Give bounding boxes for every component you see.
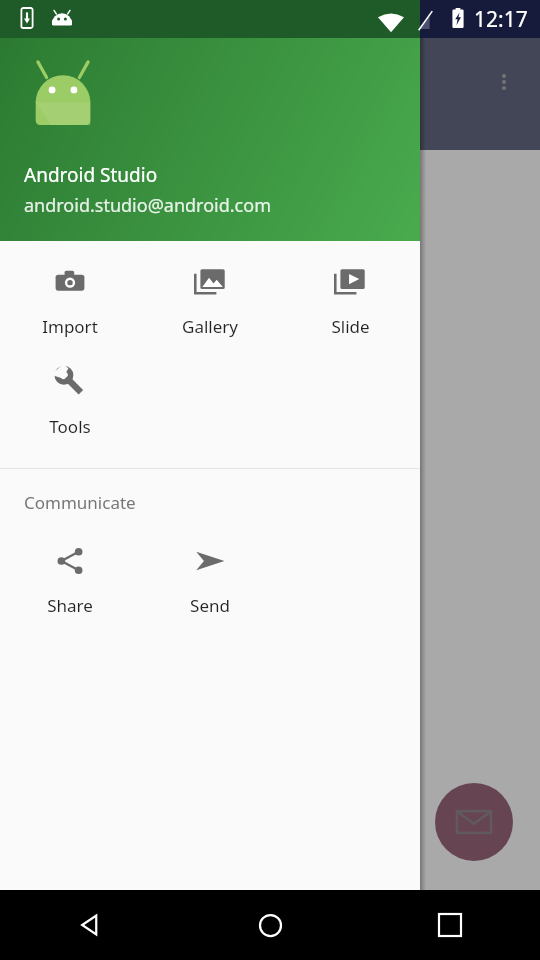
button[interactable]: Import [0,252,140,352]
button[interactable]: Slide [280,252,420,352]
button[interactable]: Compose email [435,783,513,861]
button[interactable]: Send [140,531,280,631]
button[interactable]: More options [480,58,528,106]
staticText: Import [42,315,98,338]
staticText: Send [190,594,230,617]
staticText: android.studio@android.com [24,193,271,218]
button[interactable]: Recent apps [422,897,478,953]
button[interactable]: Gallery [140,252,280,352]
staticText: Gallery [182,315,238,338]
button[interactable]: Share [0,531,140,631]
staticText: Slide [331,315,370,338]
staticText: Android Studio [24,162,158,188]
staticText: 12:17 [474,5,528,34]
staticText: Communicate [24,491,136,514]
button[interactable]: Tools [0,352,140,452]
button[interactable]: Back [62,897,118,953]
staticText: Tools [49,415,91,438]
staticText: Share [47,594,93,617]
button[interactable]: Home [242,897,298,953]
